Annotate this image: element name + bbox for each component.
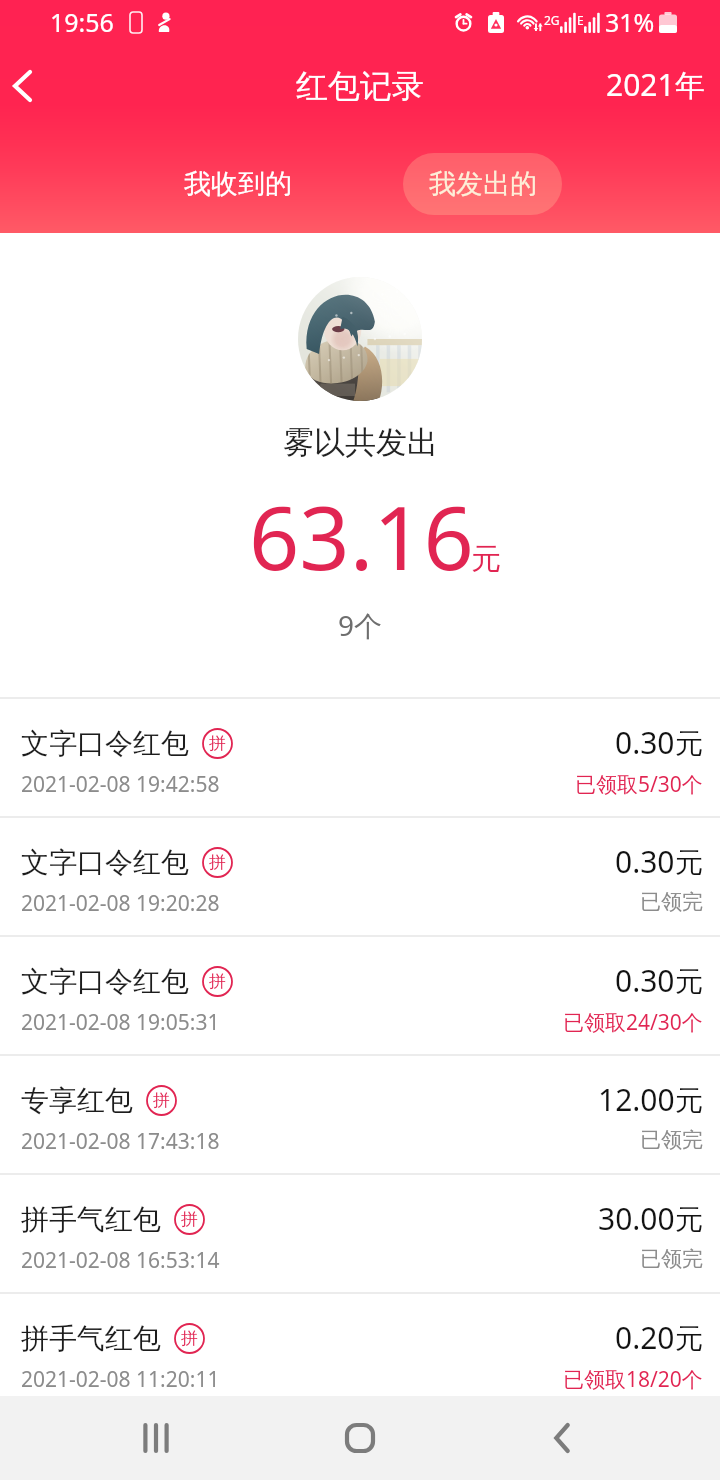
staticText: 红包记录 (296, 66, 424, 106)
button[interactable]: 文字口令红包 (0, 937, 720, 1054)
button[interactable]: Home (318, 1396, 402, 1480)
staticText: 2021-02-08 19:42:58 (21, 770, 220, 799)
staticText: 2021-02-08 19:05:31 (21, 1008, 220, 1037)
button[interactable]: 我收到的 (158, 153, 317, 215)
staticText: 拼 (209, 852, 226, 873)
staticText: 已领取18/20个 (563, 1365, 703, 1394)
staticText: 拼手气红包 (21, 1321, 161, 1356)
button[interactable]: 2021年 (606, 64, 705, 105)
staticText: 元 (471, 540, 501, 578)
staticText: 已领取24/30个 (563, 1008, 703, 1037)
staticText: 9个 (338, 606, 383, 644)
staticText: 元 (675, 1321, 703, 1356)
staticText: 0.30 (615, 722, 675, 763)
staticText: 拼 (209, 733, 226, 754)
button[interactable]: 文字口令红包 (0, 699, 720, 816)
staticText: 元 (675, 1202, 703, 1237)
button[interactable]: 拼手气红包 (0, 1175, 720, 1292)
staticText: 30.00 (598, 1198, 675, 1239)
staticText: 拼 (153, 1090, 170, 1111)
staticText: 2021-02-08 16:53:14 (21, 1246, 220, 1275)
staticText: 已领完 (640, 1246, 703, 1272)
staticText: 0.30 (615, 841, 675, 882)
button[interactable]: Recent apps (114, 1396, 198, 1480)
button[interactable]: Back (0, 58, 56, 114)
staticText: 拼 (181, 1209, 198, 1230)
staticText: 雾以共发出 (283, 423, 438, 462)
staticText: 我发出的 (429, 167, 537, 201)
staticText: 已领完 (640, 1127, 703, 1153)
staticText: 2G (544, 12, 560, 28)
button[interactable]: 拼手气红包 (0, 1294, 720, 1411)
staticText: 63.16 (249, 476, 474, 596)
staticText: 拼 (209, 971, 226, 992)
staticText: 元 (675, 1083, 703, 1118)
staticText: 0.30 (615, 960, 675, 1001)
staticText: 12.00 (598, 1079, 675, 1120)
staticText: 0.20 (615, 1317, 675, 1358)
staticText: 拼手气红包 (21, 1202, 161, 1237)
staticText: 元 (675, 845, 703, 880)
staticText: 文字口令红包 (21, 845, 189, 880)
staticText: 已领取5/30个 (575, 770, 703, 799)
staticText: 我收到的 (184, 167, 292, 201)
staticText: E (577, 12, 584, 28)
staticText: 元 (675, 726, 703, 761)
staticText: 2021-02-08 11:20:11 (21, 1365, 220, 1394)
staticText: 元 (675, 964, 703, 999)
staticText: 19:56 (50, 5, 114, 39)
button[interactable]: 文字口令红包 (0, 818, 720, 935)
staticText: 2021-02-08 17:43:18 (21, 1127, 220, 1156)
staticText: 文字口令红包 (21, 964, 189, 999)
staticText: 专享红包 (21, 1083, 133, 1118)
staticText: 拼 (181, 1328, 198, 1349)
staticText: 2021-02-08 19:20:28 (21, 889, 220, 918)
button[interactable]: 专享红包 (0, 1056, 720, 1173)
button[interactable]: Back (518, 1396, 602, 1480)
button[interactable]: 我发出的 (403, 153, 562, 215)
staticText: 31% (605, 5, 655, 39)
staticText: 已领完 (640, 889, 703, 915)
staticText: 文字口令红包 (21, 726, 189, 761)
